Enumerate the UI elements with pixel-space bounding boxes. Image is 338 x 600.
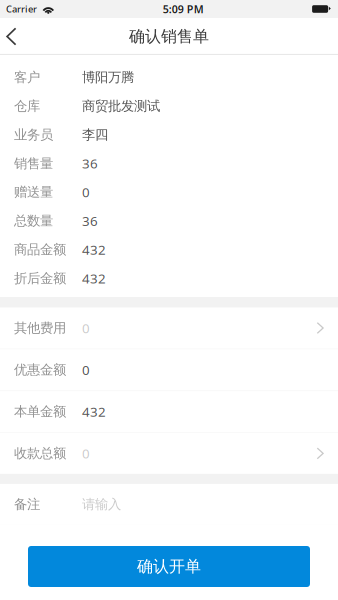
staticText: 0	[82, 183, 90, 201]
staticText: 客户	[14, 69, 40, 86]
staticText: 36	[82, 155, 98, 172]
staticText: 432	[82, 403, 106, 420]
staticText: 收款总额	[14, 445, 66, 462]
button[interactable]: Back	[0, 18, 23, 55]
button[interactable]: 其他费用	[0, 307, 338, 348]
staticText: 其他费用	[14, 320, 66, 336]
staticText: Carrier	[6, 3, 37, 15]
staticText: 商品金额	[14, 241, 66, 258]
staticText: 李四	[82, 127, 108, 143]
staticText: 0	[82, 319, 90, 337]
staticText: 确认开单	[137, 557, 201, 576]
staticText: 0	[82, 444, 90, 462]
staticText: 432	[82, 269, 106, 287]
staticText: 商贸批发测试	[82, 98, 160, 114]
staticText: 0	[82, 361, 90, 379]
staticText: 赠送量	[14, 184, 53, 200]
staticText: 本单金额	[14, 403, 66, 420]
staticText: 优惠金额	[14, 362, 66, 378]
staticText: 总数量	[14, 213, 53, 229]
staticText: 432	[82, 241, 106, 258]
button[interactable]: 收款总额	[0, 433, 338, 474]
staticText: 确认销售单	[129, 27, 209, 46]
staticText: 折后金额	[14, 270, 66, 286]
button[interactable]: 确认开单	[28, 546, 310, 587]
staticText: 销售量	[14, 155, 53, 172]
staticText: 请输入	[82, 496, 121, 513]
staticText: 5:09 PM	[163, 2, 204, 16]
staticText: 备注	[14, 496, 40, 513]
staticText: 业务员	[14, 127, 53, 143]
staticText: 36	[82, 212, 98, 230]
staticText: 仓库	[14, 98, 40, 114]
staticText: 博阳万腾	[82, 69, 134, 86]
